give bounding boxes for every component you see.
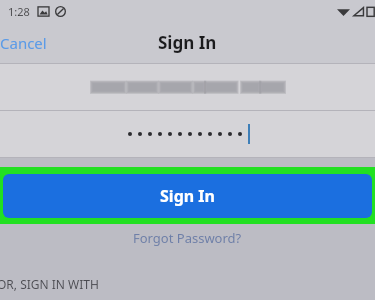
staticText: Cancel — [0, 33, 47, 53]
button[interactable]: Forgot Password? — [127, 226, 248, 250]
button[interactable] — [0, 111, 375, 157]
staticText: OR, SIGN IN WITH — [0, 276, 99, 292]
staticText: 1:28 — [8, 4, 30, 19]
staticText: Sign In — [158, 31, 217, 54]
staticText: Forgot Password? — [133, 229, 242, 247]
staticText: Sign In — [160, 185, 215, 207]
button[interactable] — [0, 64, 375, 110]
button[interactable]: Sign In — [3, 174, 372, 218]
button[interactable]: Cancel — [0, 27, 51, 59]
